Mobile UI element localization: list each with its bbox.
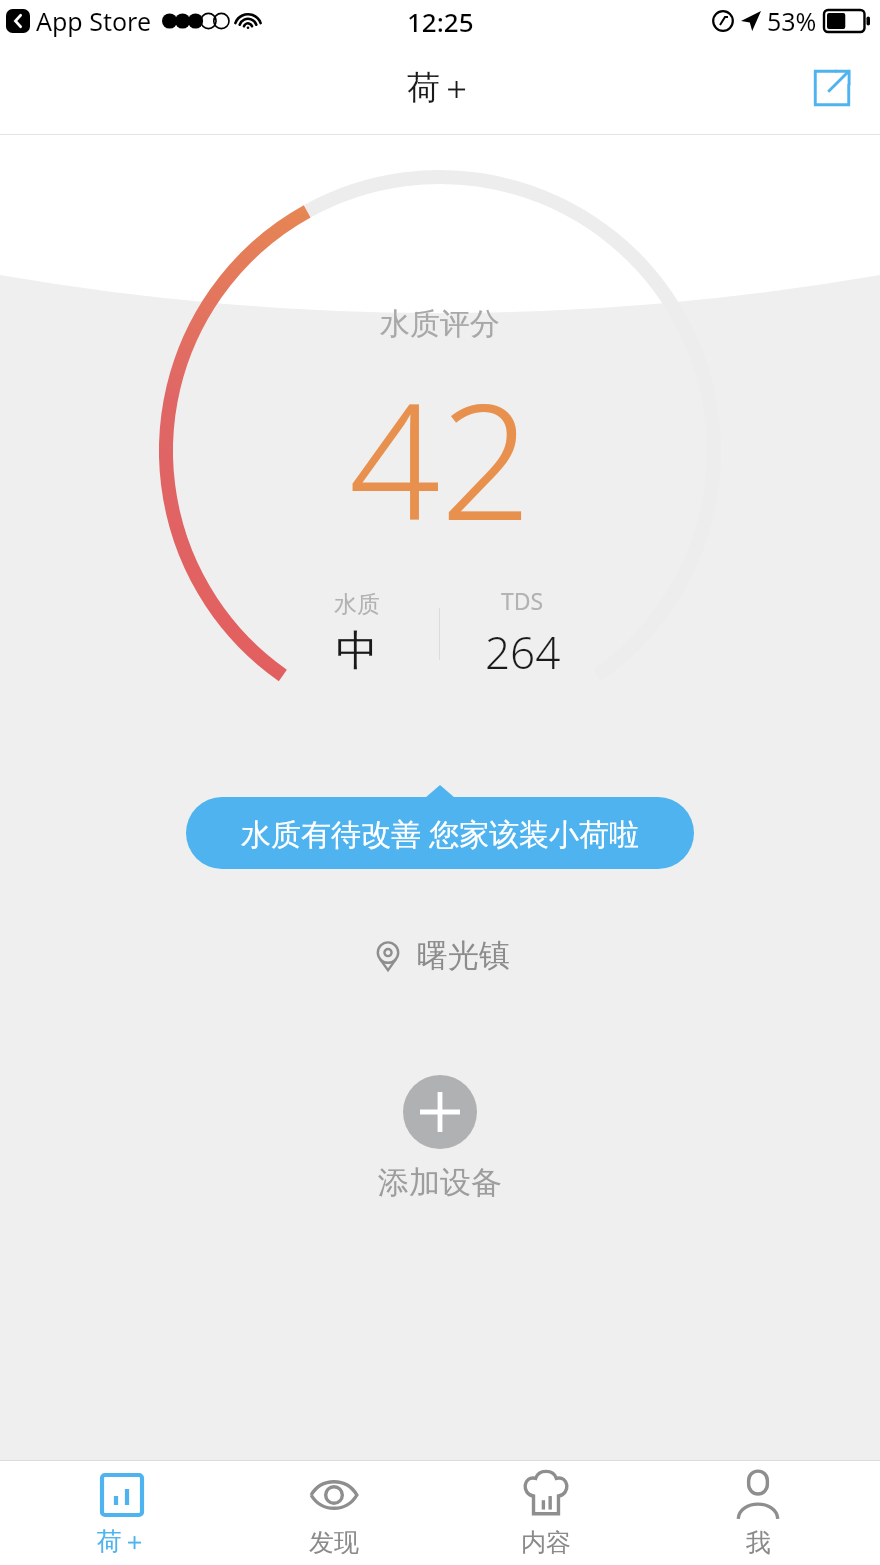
staticText: 42 [349, 349, 532, 567]
button[interactable]: 荷＋ [32, 1464, 212, 1563]
button[interactable]: 添加设备 [378, 1075, 502, 1202]
staticText: 53% [767, 4, 817, 38]
button[interactable]: 曙光镇 [371, 936, 510, 975]
staticText: 12:25 [407, 4, 474, 39]
staticText: 水质 [334, 590, 380, 619]
staticText: 发现 [309, 1527, 359, 1558]
button[interactable]: Share [804, 60, 860, 116]
button[interactable]: 内容 [456, 1463, 636, 1564]
staticText: App Store [36, 4, 152, 38]
staticText: TDS [501, 585, 544, 616]
staticText: 内容 [521, 1527, 571, 1558]
staticText: 荷＋ [97, 1526, 147, 1557]
button[interactable]: 水质有待改善 您家该装小荷啦 [186, 797, 694, 869]
staticText: 水质评分 [380, 305, 500, 343]
staticText: 曙光镇 [417, 936, 510, 975]
staticText: 264 [485, 622, 561, 682]
staticText: 荷＋ [407, 67, 473, 109]
staticText: 添加设备 [378, 1163, 502, 1202]
staticText: 我 [746, 1527, 771, 1558]
staticText: 中 [336, 625, 378, 678]
staticText: 水质有待改善 您家该装小荷啦 [241, 813, 639, 854]
button[interactable]: 我 [668, 1463, 848, 1564]
button[interactable]: 发现 [244, 1463, 424, 1564]
